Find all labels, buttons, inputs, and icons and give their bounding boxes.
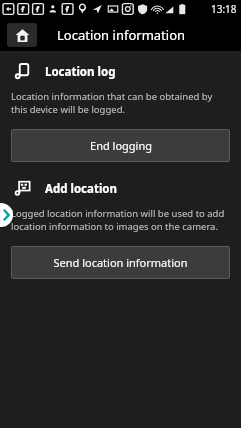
button[interactable]: Navigate up, home — [7, 23, 37, 47]
staticText: Send location information — [53, 255, 188, 270]
staticText: Location information — [57, 26, 186, 44]
staticText: Logged location information will be used… — [11, 207, 231, 233]
staticText: End logging — [90, 138, 152, 153]
staticText: 13:18 — [211, 2, 237, 16]
staticText: Add location — [45, 181, 118, 197]
staticText: Location log — [45, 64, 116, 80]
staticText: Location information that can be obtaine… — [11, 90, 231, 116]
button[interactable]: End logging — [11, 129, 230, 162]
button[interactable]: Open navigation drawer — [0, 203, 13, 227]
button[interactable]: Send location information — [11, 246, 230, 279]
